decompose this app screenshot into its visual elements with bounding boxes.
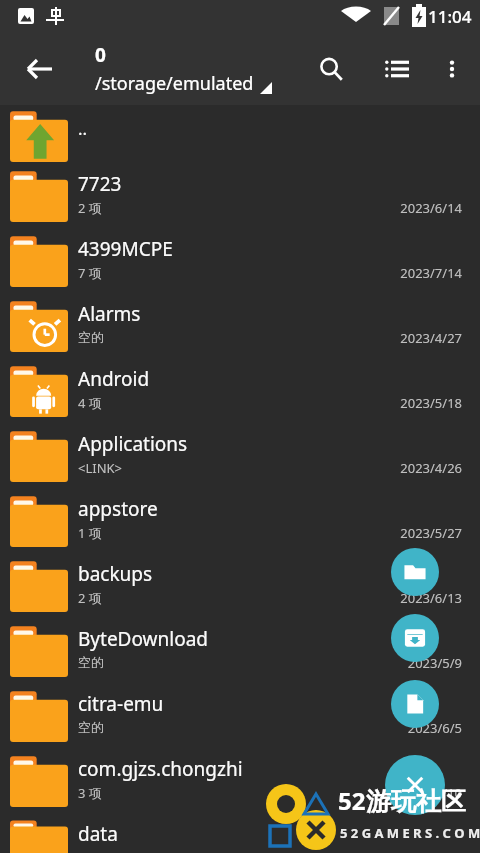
staticText: Android: [78, 366, 452, 392]
staticText: ..: [78, 117, 88, 140]
staticText: 2023/5/27: [400, 524, 462, 542]
staticText: 2023/5/10: [400, 784, 462, 802]
staticText: data: [78, 821, 452, 847]
staticText: 空的: [78, 654, 104, 670]
button[interactable]: Unarchive: [391, 614, 439, 662]
staticText: 4 项: [78, 394, 102, 412]
button[interactable]: ByteDownload: [0, 620, 480, 685]
staticText: 2 项: [78, 589, 102, 607]
staticText: Applications: [78, 431, 452, 457]
button[interactable]: 4399MCPE: [0, 230, 480, 295]
button[interactable]: Back: [14, 44, 64, 94]
staticText: 2 项: [78, 199, 102, 217]
button[interactable]: Close: [385, 755, 445, 815]
staticText: 2023/6/5: [407, 719, 462, 737]
staticText: /storage/emulated: [95, 71, 254, 96]
button[interactable]: data: [0, 815, 480, 853]
staticText: Alarms: [78, 301, 452, 327]
button[interactable]: backups: [0, 555, 480, 620]
button[interactable]: Applications: [0, 425, 480, 490]
button[interactable]: More options: [428, 45, 476, 93]
staticText: 2023/4/26: [400, 459, 462, 477]
staticText: 2023/7/14: [400, 264, 462, 282]
button[interactable]: New file: [391, 680, 439, 728]
staticText: 2023/5/9: [407, 654, 462, 672]
staticText: appstore: [78, 496, 452, 522]
staticText: 0: [95, 42, 106, 68]
staticText: 3 项: [78, 784, 102, 802]
staticText: com.gjzs.chongzhi: [78, 756, 452, 782]
button[interactable]: Alarms: [0, 295, 480, 360]
button[interactable]: com.gjzs.chongzhi: [0, 750, 480, 815]
staticText: 52: [338, 784, 366, 817]
staticText: backups: [78, 561, 452, 587]
staticText: 2023/6/13: [400, 589, 462, 607]
staticText: 11:04: [428, 5, 472, 28]
staticText: <LINK>: [78, 459, 123, 477]
staticText: 2023/6/14: [400, 199, 462, 217]
button[interactable]: New folder: [391, 548, 439, 596]
button[interactable]: 7723: [0, 165, 480, 230]
button[interactable]: ..: [0, 105, 480, 165]
staticText: 7 项: [78, 264, 102, 282]
staticText: 2023/5/18: [400, 394, 462, 412]
staticText: ByteDownload: [78, 626, 452, 652]
staticText: 1 项: [78, 524, 102, 542]
staticText: citra-emu: [78, 691, 452, 717]
staticText: 7723: [78, 171, 452, 197]
staticText: 游玩社区: [366, 786, 466, 817]
staticText: 2023/4/27: [400, 329, 462, 347]
button[interactable]: appstore: [0, 490, 480, 555]
button[interactable]: List view: [372, 44, 422, 94]
button[interactable]: Search: [306, 44, 356, 94]
staticText: 空的: [78, 719, 104, 735]
staticText: 4399MCPE: [78, 236, 452, 262]
button[interactable]: Android: [0, 360, 480, 425]
staticText: 5 2 G A M E R S . C O M: [340, 824, 480, 842]
staticText: 空的: [78, 329, 104, 345]
button[interactable]: citra-emu: [0, 685, 480, 750]
